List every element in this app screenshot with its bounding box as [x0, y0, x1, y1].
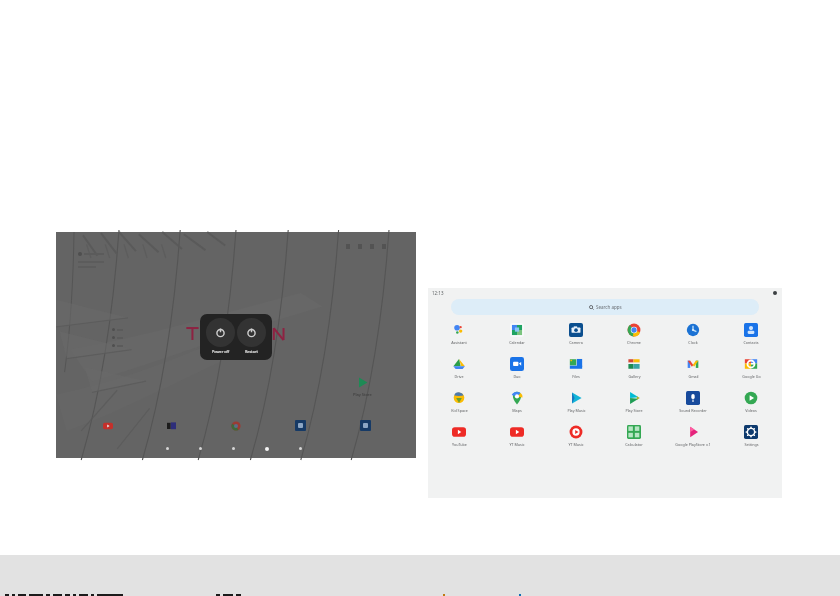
- button[interactable]: Files: [553, 357, 599, 379]
- button[interactable]: Open app: [167, 421, 177, 431]
- staticText: YT Music: [509, 442, 525, 447]
- button[interactable]: Restart: [237, 318, 266, 354]
- staticText: Chrome: [627, 340, 641, 345]
- button[interactable]: YT Music: [553, 425, 599, 447]
- staticText: Google Go: [742, 374, 761, 379]
- button[interactable]: Drive: [436, 357, 482, 379]
- button[interactable]: Play Store: [611, 391, 657, 413]
- staticText: Google PlayStore v.1: [675, 442, 711, 447]
- staticText: Kid Space: [451, 408, 468, 413]
- staticText: Restart: [245, 349, 258, 354]
- staticText: Files: [572, 374, 580, 379]
- button[interactable]: Google Go: [728, 357, 774, 379]
- staticText: Assistant: [451, 340, 467, 345]
- staticText: Search apps: [596, 304, 622, 310]
- staticText: Maps: [512, 408, 522, 413]
- button[interactable]: Gallery: [611, 357, 657, 379]
- button[interactable]: Duo: [494, 357, 540, 379]
- staticText: YT Music: [568, 442, 584, 447]
- button[interactable]: Gmail: [670, 357, 716, 379]
- button[interactable]: Sound Recorder: [670, 391, 716, 413]
- button[interactable]: Open app: [295, 420, 306, 431]
- button[interactable]: Assistant: [436, 323, 482, 345]
- button[interactable]: Search apps: [451, 299, 759, 315]
- button[interactable]: Chrome: [611, 323, 657, 345]
- button[interactable]: Chrome: [231, 421, 241, 431]
- staticText: Calendar: [509, 340, 525, 345]
- button[interactable]: Power off: [206, 318, 235, 354]
- staticText: Sound Recorder: [679, 408, 707, 413]
- button[interactable]: YouTube: [436, 425, 482, 447]
- button[interactable]: Videos: [728, 391, 774, 413]
- button[interactable]: Open app: [360, 420, 371, 431]
- button[interactable]: Calculator: [611, 425, 657, 447]
- button[interactable]: Google PlayStore v.1: [670, 425, 716, 447]
- staticText: Play Store: [353, 392, 372, 397]
- staticText: Power off: [212, 349, 230, 354]
- button[interactable]: Maps: [494, 391, 540, 413]
- button[interactable]: Camera: [553, 323, 599, 345]
- staticText: Clock: [688, 340, 698, 345]
- staticText: Duo: [513, 374, 521, 379]
- staticText: Gallery: [628, 374, 641, 379]
- button[interactable]: Kid Space: [436, 391, 482, 413]
- staticText: Gmail: [688, 374, 699, 379]
- button[interactable]: Play Music: [553, 391, 599, 413]
- staticText: Contacts: [743, 340, 759, 345]
- button[interactable]: Clock: [670, 323, 716, 345]
- button[interactable]: Contacts: [728, 323, 774, 345]
- staticText: Play Store: [625, 408, 643, 413]
- staticText: Play Music: [567, 408, 586, 413]
- staticText: Drive: [454, 374, 464, 379]
- button[interactable]: YT Music: [494, 425, 540, 447]
- button[interactable]: Settings: [728, 425, 774, 447]
- staticText: Camera: [569, 340, 583, 345]
- staticText: YouTube: [452, 442, 467, 447]
- button[interactable]: Play Store: [353, 377, 372, 397]
- staticText: Settings: [744, 442, 759, 447]
- staticText: 12:13: [432, 290, 444, 296]
- staticText: Calculator: [625, 442, 643, 447]
- button[interactable]: Calendar: [494, 323, 540, 345]
- staticText: Videos: [745, 408, 757, 413]
- button[interactable]: YouTube: [103, 421, 113, 431]
